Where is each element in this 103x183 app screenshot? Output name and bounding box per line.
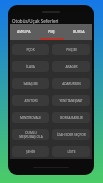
button[interactable]: ARAGER: [52, 61, 90, 72]
staticText: Otobüs/Uçak Seferleri: [12, 18, 59, 24]
staticText: BURSA: [73, 29, 85, 34]
staticText: DUMLU MEŞRUBAŞ OLA: [19, 131, 43, 139]
staticText: LİSTE: [67, 150, 76, 154]
button[interactable]: ADARURSEN: [52, 78, 90, 89]
staticText: ŞEHİR: [26, 150, 35, 154]
staticText: SAVAŞ BB: [23, 82, 38, 86]
staticText: MINITROVALE: [20, 116, 41, 120]
button[interactable]: SAVAŞ BB: [12, 78, 49, 89]
button[interactable]: PÇDK: [12, 44, 49, 55]
button[interactable]: BORSA BAYILIR: [52, 112, 90, 123]
button[interactable]: YENİ TANIŞMAT: [52, 95, 90, 106]
button[interactable]: DUMLU MEŞRUBAŞ OLA: [12, 129, 49, 140]
button[interactable]: İZAH EDER SEÇFOR: [52, 129, 90, 140]
button[interactable]: PNÇ(B): [52, 44, 90, 55]
button[interactable]: PMJ: [38, 24, 65, 38]
staticText: PÇDK: [26, 48, 35, 52]
button[interactable]: ATUTORI: [12, 95, 49, 106]
staticText: AVRUPA: [17, 29, 31, 34]
button[interactable]: BURSA: [65, 24, 92, 38]
button[interactable]: İLAVA: [12, 61, 49, 72]
button[interactable]: LİSTE: [52, 146, 90, 157]
staticText: YENİ TANIŞMAT: [59, 99, 83, 103]
staticText: ATUTORI: [24, 99, 38, 103]
staticText: İLAVA: [26, 65, 35, 69]
staticText: PNÇ(B): [66, 48, 77, 52]
staticText: PMJ: [48, 29, 55, 34]
staticText: İZAH EDER SEÇFOR: [57, 133, 86, 137]
staticText: ADARURSEN: [62, 82, 81, 86]
button[interactable]: ŞEHİR: [12, 146, 49, 157]
button[interactable]: AVRUPA: [10, 24, 38, 38]
staticText: ARAGER: [65, 65, 78, 69]
staticText: BORSA BAYILIR: [60, 116, 83, 120]
button[interactable]: MINITROVALE: [12, 112, 49, 123]
